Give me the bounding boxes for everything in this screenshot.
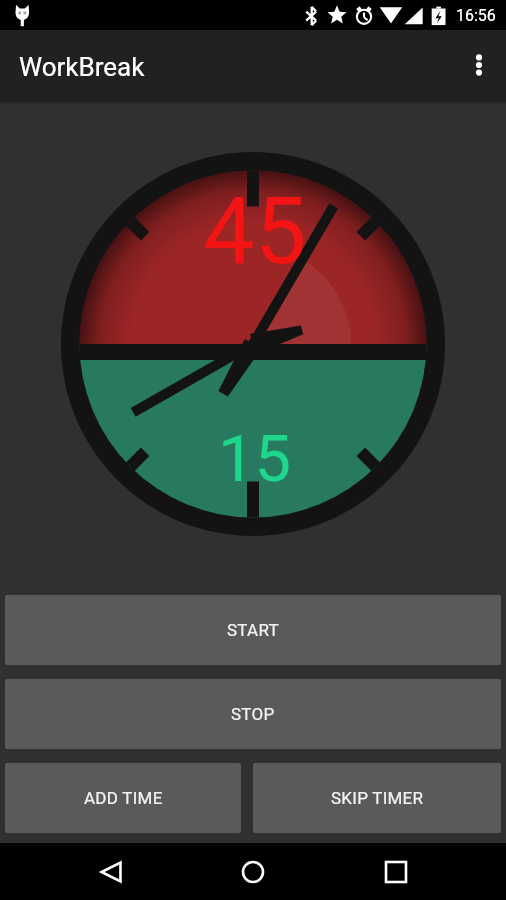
button[interactable]: SKIP TIMER xyxy=(253,763,501,833)
staticText: STOP xyxy=(231,704,275,724)
button[interactable]: ADD TIME xyxy=(5,763,241,833)
staticText: 16:56 xyxy=(456,6,496,25)
button[interactable]: STOP xyxy=(5,679,501,749)
staticText: SKIP TIMER xyxy=(331,788,424,808)
button[interactable]: Home xyxy=(229,848,277,896)
staticText: 15 xyxy=(218,421,292,497)
button[interactable]: START xyxy=(5,595,501,665)
staticText: 45 xyxy=(203,178,307,286)
staticText: WorkBreak xyxy=(19,52,145,82)
button[interactable]: More options xyxy=(455,41,503,89)
staticText: START xyxy=(227,620,279,640)
button[interactable]: Recents xyxy=(372,848,420,896)
button[interactable]: Back xyxy=(87,848,135,896)
staticText: ADD TIME xyxy=(84,788,163,808)
